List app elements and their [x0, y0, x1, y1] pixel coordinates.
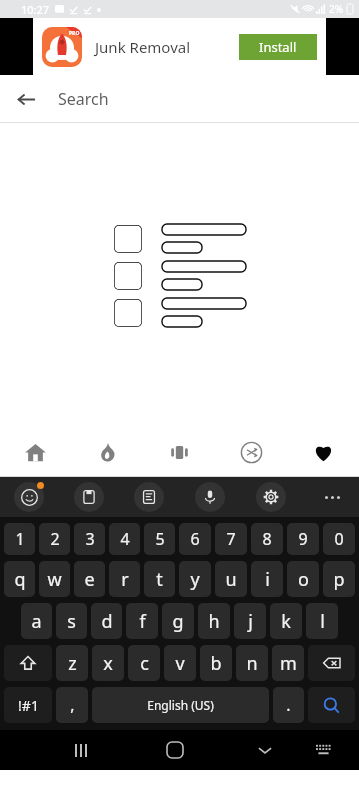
button[interactable]: a	[21, 603, 52, 639]
button[interactable]: 1	[4, 523, 35, 555]
button[interactable]: English (US)	[92, 687, 269, 723]
staticText: 10:27	[21, 2, 50, 17]
button[interactable]: Back	[8, 81, 44, 117]
staticText: 7	[226, 528, 236, 550]
staticText: q	[14, 567, 26, 592]
button[interactable]: 6	[179, 523, 211, 555]
staticText: g	[172, 609, 184, 634]
button[interactable]: 8	[251, 523, 283, 555]
staticText: 2	[50, 528, 60, 550]
staticText: 1	[15, 528, 25, 550]
button[interactable]: Home	[158, 733, 192, 767]
button[interactable]: Favorites	[287, 428, 359, 476]
button[interactable]: 4	[109, 523, 140, 555]
staticText: Search	[58, 88, 109, 110]
button[interactable]: j	[234, 603, 266, 639]
staticText: x	[103, 651, 113, 676]
staticText: w	[47, 567, 62, 592]
staticText: a	[31, 609, 42, 634]
staticText: c	[140, 651, 149, 676]
staticText: 5	[155, 528, 165, 550]
button[interactable]: x	[92, 645, 124, 681]
staticText: Install	[259, 38, 297, 56]
button[interactable]: Trending	[71, 428, 143, 476]
button[interactable]: g	[162, 603, 194, 639]
button[interactable]: Voice input	[195, 482, 225, 512]
staticText: k	[281, 609, 291, 634]
staticText: u	[225, 567, 237, 592]
button[interactable]: Recents	[64, 733, 98, 767]
staticText: 0	[334, 528, 344, 550]
button[interactable]: Install	[239, 34, 317, 60]
button[interactable]: Videos	[143, 428, 215, 476]
button[interactable]: l	[306, 603, 338, 639]
button[interactable]: v	[164, 645, 196, 681]
staticText: 4	[120, 528, 130, 550]
staticText: PRO	[69, 30, 80, 37]
staticText: !#1	[18, 696, 39, 715]
staticText: m	[280, 651, 297, 676]
staticText: English (US)	[147, 697, 214, 713]
button[interactable]: Clipboard	[74, 482, 104, 512]
button[interactable]: Shift	[4, 645, 52, 681]
button[interactable]: 2	[39, 523, 70, 555]
staticText: t	[156, 567, 163, 592]
button[interactable]: t	[144, 561, 175, 597]
button[interactable]: f	[126, 603, 158, 639]
staticText: s	[67, 609, 76, 634]
button[interactable]: y	[179, 561, 211, 597]
button[interactable]: 0	[323, 523, 355, 555]
staticText: 9	[298, 528, 308, 550]
staticText: f	[139, 609, 146, 634]
staticText: b	[210, 651, 222, 676]
button[interactable]: e	[74, 561, 105, 597]
button[interactable]: u	[215, 561, 247, 597]
staticText: i	[265, 567, 270, 592]
staticText: o	[298, 567, 309, 592]
button[interactable]: 7	[215, 523, 247, 555]
staticText: y	[190, 567, 200, 592]
button[interactable]: Emoji	[14, 482, 44, 512]
staticText: e	[84, 567, 95, 592]
button[interactable]: Backspace	[308, 645, 355, 681]
button[interactable]: Change keyboard	[306, 733, 340, 767]
button[interactable]: s	[56, 603, 87, 639]
button[interactable]: z	[56, 645, 88, 681]
staticText: l	[320, 609, 325, 634]
staticText: Junk Removal	[95, 37, 191, 57]
staticText: p	[333, 567, 345, 592]
staticText: 2%	[329, 2, 344, 16]
button[interactable]: More options	[317, 482, 347, 512]
button[interactable]: Translate	[134, 482, 164, 512]
button[interactable]: 5	[144, 523, 175, 555]
staticText: 8	[262, 528, 272, 550]
button[interactable]: w	[39, 561, 70, 597]
button[interactable]: r	[109, 561, 140, 597]
staticText: d	[101, 609, 113, 634]
button[interactable]: Home	[0, 428, 71, 476]
button[interactable]: ,	[56, 687, 88, 723]
button[interactable]: !#1	[4, 687, 52, 723]
staticText: v	[175, 651, 185, 676]
button[interactable]: i	[251, 561, 283, 597]
button[interactable]: p	[323, 561, 355, 597]
button[interactable]: PRO	[42, 27, 82, 67]
button[interactable]: 3	[74, 523, 105, 555]
staticText: h	[208, 609, 220, 634]
button[interactable]: q	[4, 561, 35, 597]
button[interactable]: 9	[287, 523, 319, 555]
button[interactable]: b	[200, 645, 232, 681]
button[interactable]: h	[198, 603, 230, 639]
button[interactable]: k	[270, 603, 302, 639]
button[interactable]: d	[91, 603, 122, 639]
button[interactable]: Search	[308, 687, 355, 723]
button[interactable]: n	[236, 645, 268, 681]
staticText: r	[121, 567, 129, 592]
button[interactable]: Settings	[256, 482, 286, 512]
button[interactable]: m	[272, 645, 304, 681]
button[interactable]: Shuffle	[215, 428, 287, 476]
button[interactable]: .	[273, 687, 304, 723]
button[interactable]: Hide keyboard	[248, 733, 282, 767]
button[interactable]: o	[287, 561, 319, 597]
button[interactable]: c	[128, 645, 160, 681]
